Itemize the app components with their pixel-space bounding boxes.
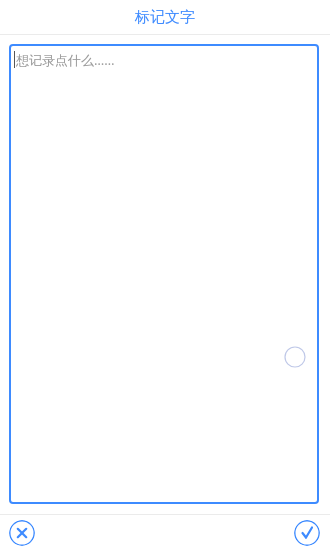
button[interactable]: Confirm <box>294 520 320 546</box>
staticText: 标记文字 <box>135 8 195 27</box>
button[interactable]: Cancel <box>9 520 35 546</box>
staticText: 想记录点什么…… <box>16 51 115 69</box>
